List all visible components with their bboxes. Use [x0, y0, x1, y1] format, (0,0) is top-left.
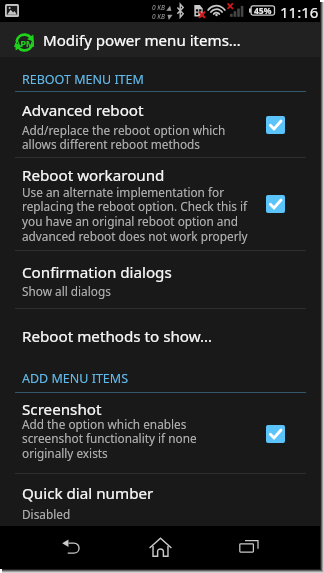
button[interactable]: Home	[116, 526, 205, 569]
staticText: Add the option which enables screenshot …	[22, 416, 267, 462]
staticText: Confirmation dialogs	[22, 262, 172, 283]
button[interactable]	[0, 158, 320, 250]
staticText: Reboot workaround	[22, 165, 165, 186]
button[interactable]: Back	[26, 526, 116, 569]
staticText: Show all dialogs	[22, 283, 267, 299]
button[interactable]	[0, 251, 320, 307]
staticText: 45%	[254, 5, 272, 17]
staticText: Disabled	[22, 506, 267, 522]
staticText: Add/replace the reboot option which allo…	[22, 122, 267, 153]
staticText: 0 KB ▼	[152, 12, 172, 21]
staticText: Reboot methods to show…	[22, 326, 213, 347]
staticText: Advanced reboot	[22, 100, 144, 121]
staticText: Screenshot	[22, 399, 102, 420]
button[interactable]: APM	[0, 22, 320, 57]
staticText: ADD MENU ITEMS	[22, 370, 129, 387]
staticText: REBOOT MENU ITEM	[22, 71, 144, 88]
button[interactable]	[0, 309, 320, 360]
button[interactable]	[0, 474, 320, 525]
button[interactable]	[0, 396, 320, 472]
staticText: Modify power menu items…	[43, 30, 241, 51]
button[interactable]: Toggle Screenshot	[266, 425, 285, 443]
staticText: 11:16	[280, 2, 319, 22]
button[interactable]: Toggle Reboot workaround	[266, 195, 285, 213]
staticText: Quick dial number	[22, 483, 154, 504]
button[interactable]: Recent apps	[205, 526, 293, 569]
staticText: Use an alternate implementation for repl…	[22, 184, 267, 245]
staticText: 0 KB ▲	[152, 3, 172, 12]
button[interactable]: Toggle Advanced reboot	[266, 116, 285, 134]
button[interactable]	[0, 99, 320, 157]
staticText: APM	[14, 37, 35, 50]
